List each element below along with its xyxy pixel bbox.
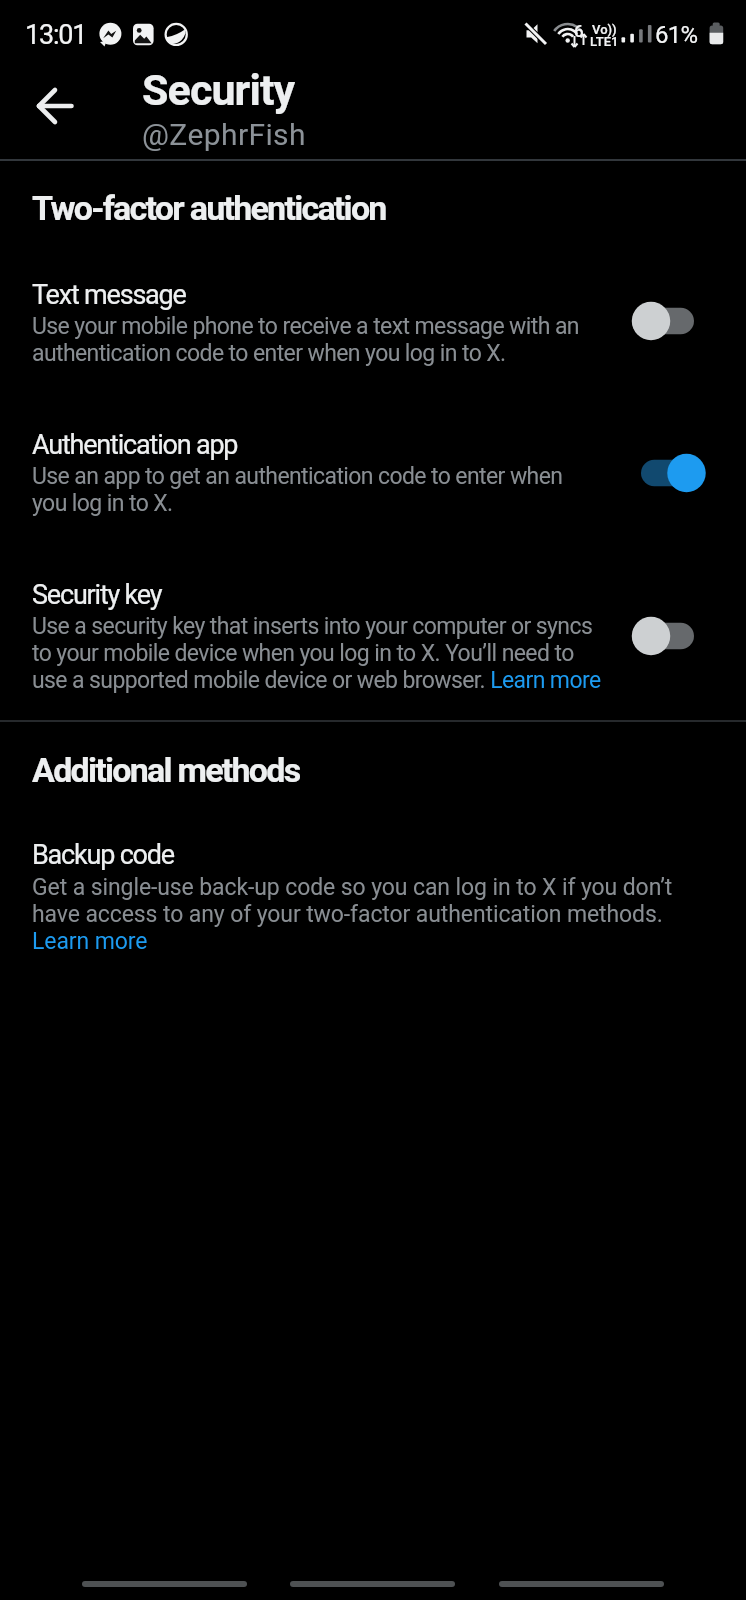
staticText: 6 — [574, 21, 584, 41]
staticText: Security — [142, 65, 295, 115]
staticText: Additional methods — [32, 750, 300, 790]
staticText: @ZephrFish — [142, 117, 306, 152]
staticText: Security key — [32, 579, 162, 611]
staticText: LTE1 — [590, 34, 619, 49]
staticText: Use a security key that inserts into you… — [32, 613, 601, 694]
staticText: Use your mobile phone to receive a text … — [32, 313, 579, 367]
staticText: Backup code — [32, 839, 174, 871]
staticText: Two-factor authentication — [32, 188, 386, 228]
staticText: 13:01 — [25, 19, 87, 51]
staticText: Authentication app — [32, 429, 238, 461]
staticText: Get a single-use back-up code so you can… — [32, 874, 673, 955]
staticText: Text message — [32, 279, 186, 311]
staticText: Vo)) — [592, 22, 617, 37]
staticText: 61% — [655, 21, 698, 49]
staticText: Use an app to get an authentication code… — [32, 463, 563, 517]
